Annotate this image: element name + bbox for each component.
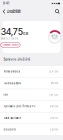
staticText: Správce úložiště: [3, 58, 30, 61]
staticText: 34,75: [1, 27, 23, 37]
staticText: Hry: [3, 93, 7, 96]
staticText: 9:41: [3, 2, 9, 5]
staticText: Fotky a videa: [3, 70, 19, 73]
button[interactable]: Aplikace pro filmy a TV: [0, 101, 63, 112]
button[interactable]: Uvolnit místo: [1, 42, 20, 47]
staticText: využito: [52, 37, 58, 40]
staticText: využito z 128 GB: [1, 37, 18, 40]
button[interactable]: Search: [52, 7, 63, 16]
staticText: 12,4 GB: [48, 70, 58, 73]
staticText: Uvolnit místo: [3, 43, 18, 46]
button[interactable]: Hudba a zvuk: [0, 78, 63, 89]
staticText: 4,81 GB: [49, 105, 58, 108]
staticText: GB: [23, 32, 28, 36]
staticText: 3,92 GB: [49, 116, 58, 119]
button[interactable]: Další aplikace: [0, 112, 63, 124]
staticText: 27 %: [51, 34, 58, 37]
staticText: 2,25 GB: [49, 128, 58, 131]
staticText: Hudba a zvuk: [3, 82, 20, 85]
button[interactable]: Úložiště: [0, 7, 23, 16]
button[interactable]: Fotky a videa: [0, 66, 63, 77]
staticText: 6,12 GB: [50, 82, 58, 85]
button[interactable]: Soubory: [0, 124, 63, 135]
staticText: Soubory: [3, 128, 15, 131]
button[interactable]: Hry: [0, 89, 63, 100]
staticText: Další aplikace: [3, 116, 21, 120]
staticText: 5,34 GB: [48, 93, 58, 96]
staticText: Aplikace pro filmy a TV: [3, 105, 35, 108]
staticText: Úložiště: [7, 9, 21, 14]
